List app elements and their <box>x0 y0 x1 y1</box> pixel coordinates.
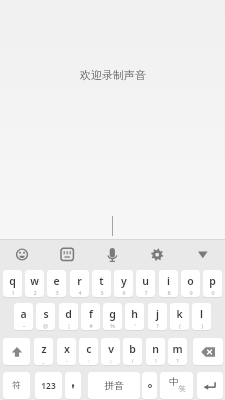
button[interactable] <box>142 372 157 399</box>
staticText: ~ <box>22 322 26 329</box>
staticText: y <box>121 274 127 288</box>
button[interactable]: 123 <box>35 372 62 399</box>
staticText: ? <box>176 357 179 364</box>
button[interactable]: f <box>81 303 100 330</box>
button[interactable] <box>197 372 223 399</box>
button[interactable] <box>53 241 81 267</box>
button[interactable]: p <box>203 270 222 297</box>
button[interactable]: x <box>57 338 76 365</box>
staticText: h <box>131 307 138 321</box>
staticText: d <box>65 307 72 321</box>
staticText: ! <box>155 357 157 364</box>
staticText: n <box>152 342 159 356</box>
button[interactable]: h <box>125 303 144 330</box>
button[interactable]: v <box>101 338 120 365</box>
button[interactable] <box>98 241 126 267</box>
staticText: 0 <box>211 289 215 296</box>
staticText: 3 <box>55 289 59 296</box>
staticText: 英 <box>179 385 186 393</box>
staticText: 符 <box>12 380 21 391</box>
staticText: x <box>64 342 70 356</box>
button[interactable]: i <box>159 270 178 297</box>
staticText: 1 <box>11 289 15 296</box>
staticText: 123 <box>41 380 56 391</box>
button[interactable] <box>193 338 223 365</box>
staticText: e <box>53 274 60 288</box>
staticText: v <box>108 342 114 356</box>
staticText: l <box>200 307 203 321</box>
staticText: _ <box>42 357 45 364</box>
staticText: ) <box>201 322 203 329</box>
staticText: @ <box>43 322 48 329</box>
staticText: f <box>89 307 93 321</box>
staticText: m <box>172 342 183 356</box>
staticText: 8 <box>167 289 171 296</box>
staticText: : <box>88 357 90 364</box>
button[interactable]: g <box>103 303 122 330</box>
staticText: / <box>131 357 134 364</box>
button[interactable]: k <box>170 303 189 330</box>
staticText: # <box>89 322 93 329</box>
button[interactable]: q <box>3 270 22 297</box>
button[interactable]: b <box>123 338 142 365</box>
staticText: 4 <box>78 289 82 296</box>
staticText: c <box>86 342 92 356</box>
staticText: 拼音 <box>104 380 124 392</box>
staticText: p <box>209 274 216 288</box>
button[interactable]: t <box>92 270 111 297</box>
button[interactable]: r <box>70 270 89 297</box>
staticText: ¦ <box>67 322 71 329</box>
button[interactable]: s <box>36 303 55 330</box>
staticText: z <box>41 342 47 356</box>
button[interactable]: j <box>148 303 167 330</box>
staticText: g <box>109 307 116 321</box>
staticText: 欢迎录制声音 <box>80 68 146 82</box>
staticText: w <box>30 274 39 288</box>
staticText: 2 <box>33 289 37 296</box>
staticText: i <box>167 274 170 288</box>
button[interactable]: l <box>192 303 211 330</box>
staticText: ? <box>156 322 159 329</box>
button[interactable] <box>3 338 30 365</box>
button[interactable]: z <box>34 338 53 365</box>
staticText: q <box>9 274 16 288</box>
staticText: t <box>99 274 104 288</box>
button[interactable]: w <box>25 270 44 297</box>
button[interactable]: y <box>114 270 133 297</box>
staticText: 5 <box>100 289 104 296</box>
button[interactable] <box>8 241 36 267</box>
button[interactable]: 符 <box>3 372 30 399</box>
staticText: / <box>178 383 181 391</box>
button[interactable]: c <box>79 338 98 365</box>
staticText: 6 <box>122 289 126 296</box>
button[interactable]: n <box>146 338 165 365</box>
button[interactable] <box>143 241 171 267</box>
staticText: u <box>142 274 149 288</box>
staticText: 7 <box>144 289 148 296</box>
button[interactable] <box>65 372 81 399</box>
staticText: 中 <box>169 376 179 388</box>
staticText: ( <box>179 322 181 329</box>
button[interactable]: d <box>59 303 78 330</box>
button[interactable] <box>189 241 217 267</box>
button[interactable]: o <box>181 270 200 297</box>
button[interactable]: 中 <box>160 372 193 399</box>
staticText: a <box>20 307 27 321</box>
staticText: 9 <box>189 289 193 296</box>
staticText: % <box>110 322 115 329</box>
staticText: j <box>156 307 159 321</box>
staticText: o <box>187 274 194 288</box>
button[interactable]: e <box>47 270 66 297</box>
staticText: ' <box>134 322 136 329</box>
staticText: s <box>43 307 49 321</box>
staticText: ; <box>110 357 112 364</box>
staticText: b <box>129 342 136 356</box>
button[interactable]: u <box>136 270 155 297</box>
button[interactable]: m <box>168 338 187 365</box>
staticText: k <box>176 307 183 321</box>
button[interactable]: 拼音 <box>88 372 140 399</box>
button[interactable]: a <box>14 303 33 330</box>
staticText: r <box>77 274 82 288</box>
staticText: - <box>66 357 68 364</box>
